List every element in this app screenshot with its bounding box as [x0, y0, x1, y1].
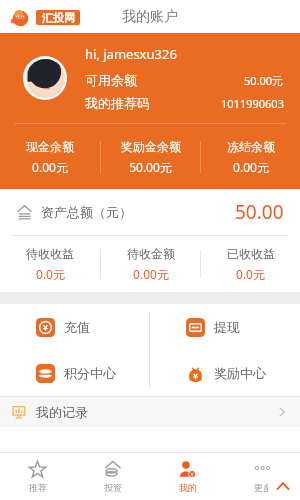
- button[interactable]: 奖励中心: [150, 350, 300, 396]
- button[interactable]: 投资: [75, 452, 150, 500]
- button[interactable]: Profile photo: [23, 56, 67, 100]
- staticText: 我的: [179, 482, 197, 493]
- button[interactable]: 提现: [150, 304, 300, 350]
- staticText: 提现: [214, 319, 240, 335]
- staticText: hi, jamesxu326: [85, 45, 177, 63]
- staticText: 积分中心: [64, 365, 116, 381]
- staticText: 投资: [104, 482, 122, 493]
- staticText: 充值: [64, 319, 90, 335]
- staticText: 推荐: [29, 482, 47, 493]
- staticText: 奖励中心: [214, 365, 266, 381]
- staticText: 0.00元: [233, 159, 269, 175]
- staticText: 待收金额: [127, 246, 175, 261]
- staticText: 50.00元: [129, 159, 172, 175]
- staticText: 冻结余额: [227, 139, 275, 154]
- staticText: 0.00元: [133, 266, 169, 282]
- staticText: 0.00元: [32, 159, 68, 175]
- staticText: 已收收益: [227, 246, 275, 261]
- staticText: 我的账户: [122, 8, 178, 26]
- staticText: 0.0元: [36, 266, 65, 282]
- button[interactable]: Expand more menu: [268, 473, 298, 499]
- button[interactable]: 积分中心: [0, 350, 149, 396]
- button[interactable]: 现金余额: [0, 139, 100, 175]
- staticText: 可用余额: [85, 72, 137, 88]
- staticText: 奖励金余额: [121, 139, 181, 154]
- button[interactable]: 冻结余额: [201, 139, 300, 175]
- staticText: 我的推荐码: [85, 95, 150, 111]
- staticText: 现金余额: [26, 139, 74, 154]
- staticText: 汇投网: [42, 11, 75, 25]
- staticText: 我的记录: [36, 404, 88, 420]
- staticText: 1011990603: [221, 96, 284, 111]
- button[interactable]: 充值: [0, 304, 149, 350]
- staticText: 0.0元: [236, 266, 265, 282]
- button[interactable]: 我的记录: [0, 397, 300, 427]
- staticText: 更多: [254, 482, 272, 493]
- staticText: 50.00: [235, 199, 284, 225]
- button[interactable]: 我的: [150, 452, 225, 500]
- staticText: 50.00元: [244, 73, 284, 88]
- button[interactable]: 待收金额: [101, 246, 200, 282]
- button[interactable]: 已收收益: [201, 246, 300, 282]
- staticText: 待收收益: [26, 246, 74, 261]
- button[interactable]: 待收收益: [0, 246, 100, 282]
- staticText: 资产总额（元）: [41, 204, 132, 220]
- button[interactable]: 更多: [225, 452, 300, 500]
- button[interactable]: 奖励金余额: [101, 139, 200, 175]
- button[interactable]: 资产总额（元）: [0, 189, 300, 235]
- button[interactable]: 推荐: [0, 452, 75, 500]
